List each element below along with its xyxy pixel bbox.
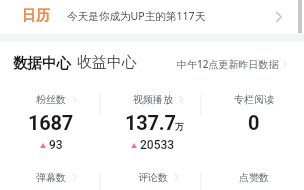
staticText: 弹幕数 — [36, 171, 66, 184]
staticText: 今天是你成为UP主的第117天 — [67, 9, 206, 23]
staticText: 93 — [49, 138, 63, 152]
button[interactable]: 日历 — [0, 0, 304, 34]
button[interactable]: 收益中心 — [77, 53, 137, 72]
other: Open calendar — [274, 11, 284, 23]
button[interactable]: 点赞数 — [203, 160, 304, 190]
staticText: 专栏阅读 — [234, 93, 274, 106]
staticText: 137.7 — [125, 111, 176, 134]
button[interactable]: 中午12点更新昨日数据 — [177, 56, 288, 70]
staticText: 日历 — [22, 7, 50, 25]
staticText: 中午12点更新昨日数据 — [177, 57, 279, 71]
button[interactable]: 弹幕数 — [0, 160, 102, 190]
staticText: 评论数 — [138, 171, 168, 184]
staticText: 粉丝数 — [36, 93, 66, 106]
button[interactable]: 视频播放 — [102, 93, 203, 152]
staticText: 20533 — [140, 138, 175, 152]
button[interactable]: 数据中心 — [13, 54, 71, 72]
button[interactable]: 粉丝数 — [0, 93, 102, 152]
staticText: 万 — [175, 121, 184, 132]
button[interactable]: 评论数 — [102, 160, 203, 190]
staticText: 1687 — [28, 111, 74, 134]
staticText: 点赞数 — [239, 171, 269, 184]
staticText: 视频播放 — [133, 93, 173, 106]
button[interactable]: 专栏阅读 — [203, 93, 304, 138]
staticText: 0 — [248, 111, 260, 134]
